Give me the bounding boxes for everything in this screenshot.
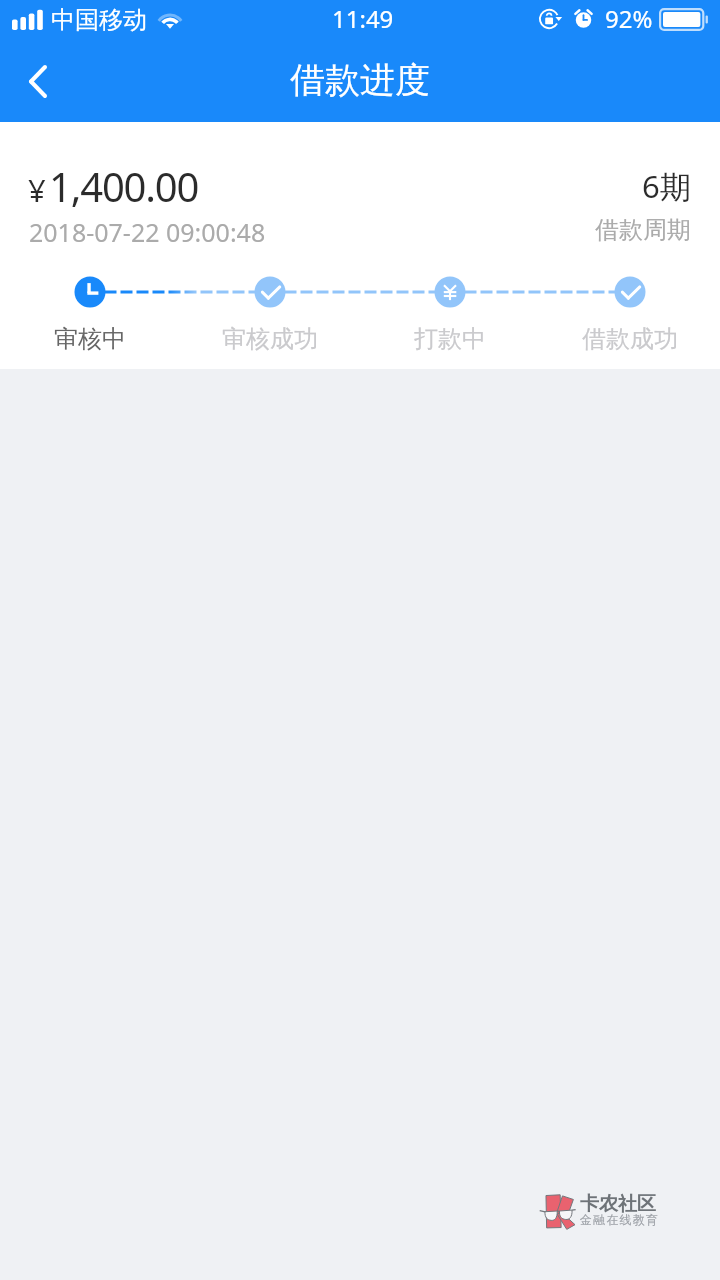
button[interactable]: Back <box>4 45 72 117</box>
staticText: 金融在线教育 <box>580 1212 660 1227</box>
staticText: 卡农社区 <box>580 1192 656 1216</box>
staticText: 借款成功 <box>582 324 678 354</box>
staticText: 1,400.00 <box>49 159 199 213</box>
staticText: 审核中 <box>54 324 126 354</box>
staticText: 借款周期 <box>595 215 691 245</box>
staticText: 92% <box>605 2 653 35</box>
staticText: 审核成功 <box>222 324 318 354</box>
staticText: 2018-07-22 09:00:48 <box>29 215 266 249</box>
staticText: ¥ <box>28 169 46 211</box>
staticText: 打款中 <box>414 324 486 354</box>
staticText: 借款进度 <box>290 58 430 102</box>
staticText: 11:49 <box>332 2 394 35</box>
staticText: 6期 <box>642 165 691 207</box>
staticText: 中国移动 <box>51 5 147 35</box>
